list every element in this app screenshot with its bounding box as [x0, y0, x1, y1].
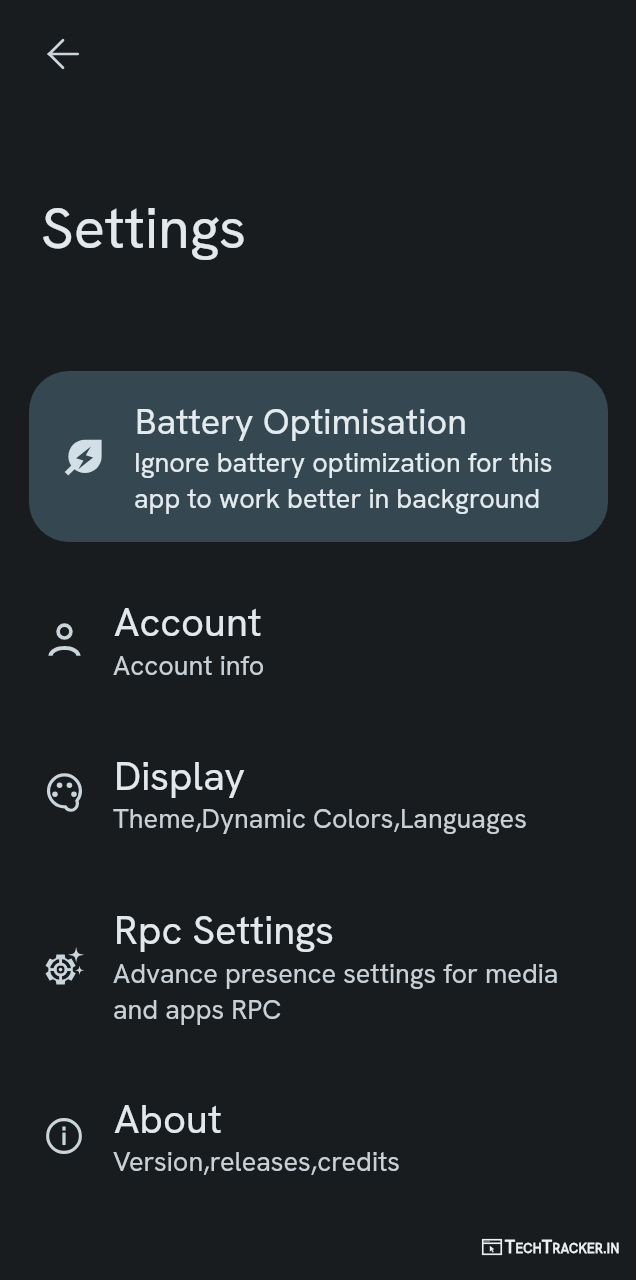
staticText: Theme,Dynamic Colors,Languages — [113, 801, 527, 836]
staticText: About — [114, 1093, 222, 1145]
staticText: Version,releases,credits — [113, 1144, 401, 1179]
staticText: Advance presence settings for media and … — [113, 956, 559, 1027]
staticText: Battery Optimisation — [135, 398, 467, 445]
staticText: Account info — [113, 648, 265, 683]
staticText: Account — [114, 596, 262, 648]
button[interactable]: Battery Optimisation — [29, 371, 608, 542]
button[interactable]: About — [0, 1079, 636, 1191]
staticText: Display — [114, 750, 246, 802]
staticText: TECHTRACKER.IN — [505, 1236, 620, 1258]
staticText: Rpc Settings — [114, 904, 334, 956]
staticText: Settings — [41, 190, 247, 266]
button[interactable]: Display — [0, 736, 636, 848]
button[interactable]: Rpc Settings — [0, 890, 636, 1040]
button[interactable]: Back — [34, 25, 92, 83]
staticText: Ignore battery optimization for this app… — [134, 445, 553, 516]
button[interactable]: Account — [0, 582, 636, 694]
